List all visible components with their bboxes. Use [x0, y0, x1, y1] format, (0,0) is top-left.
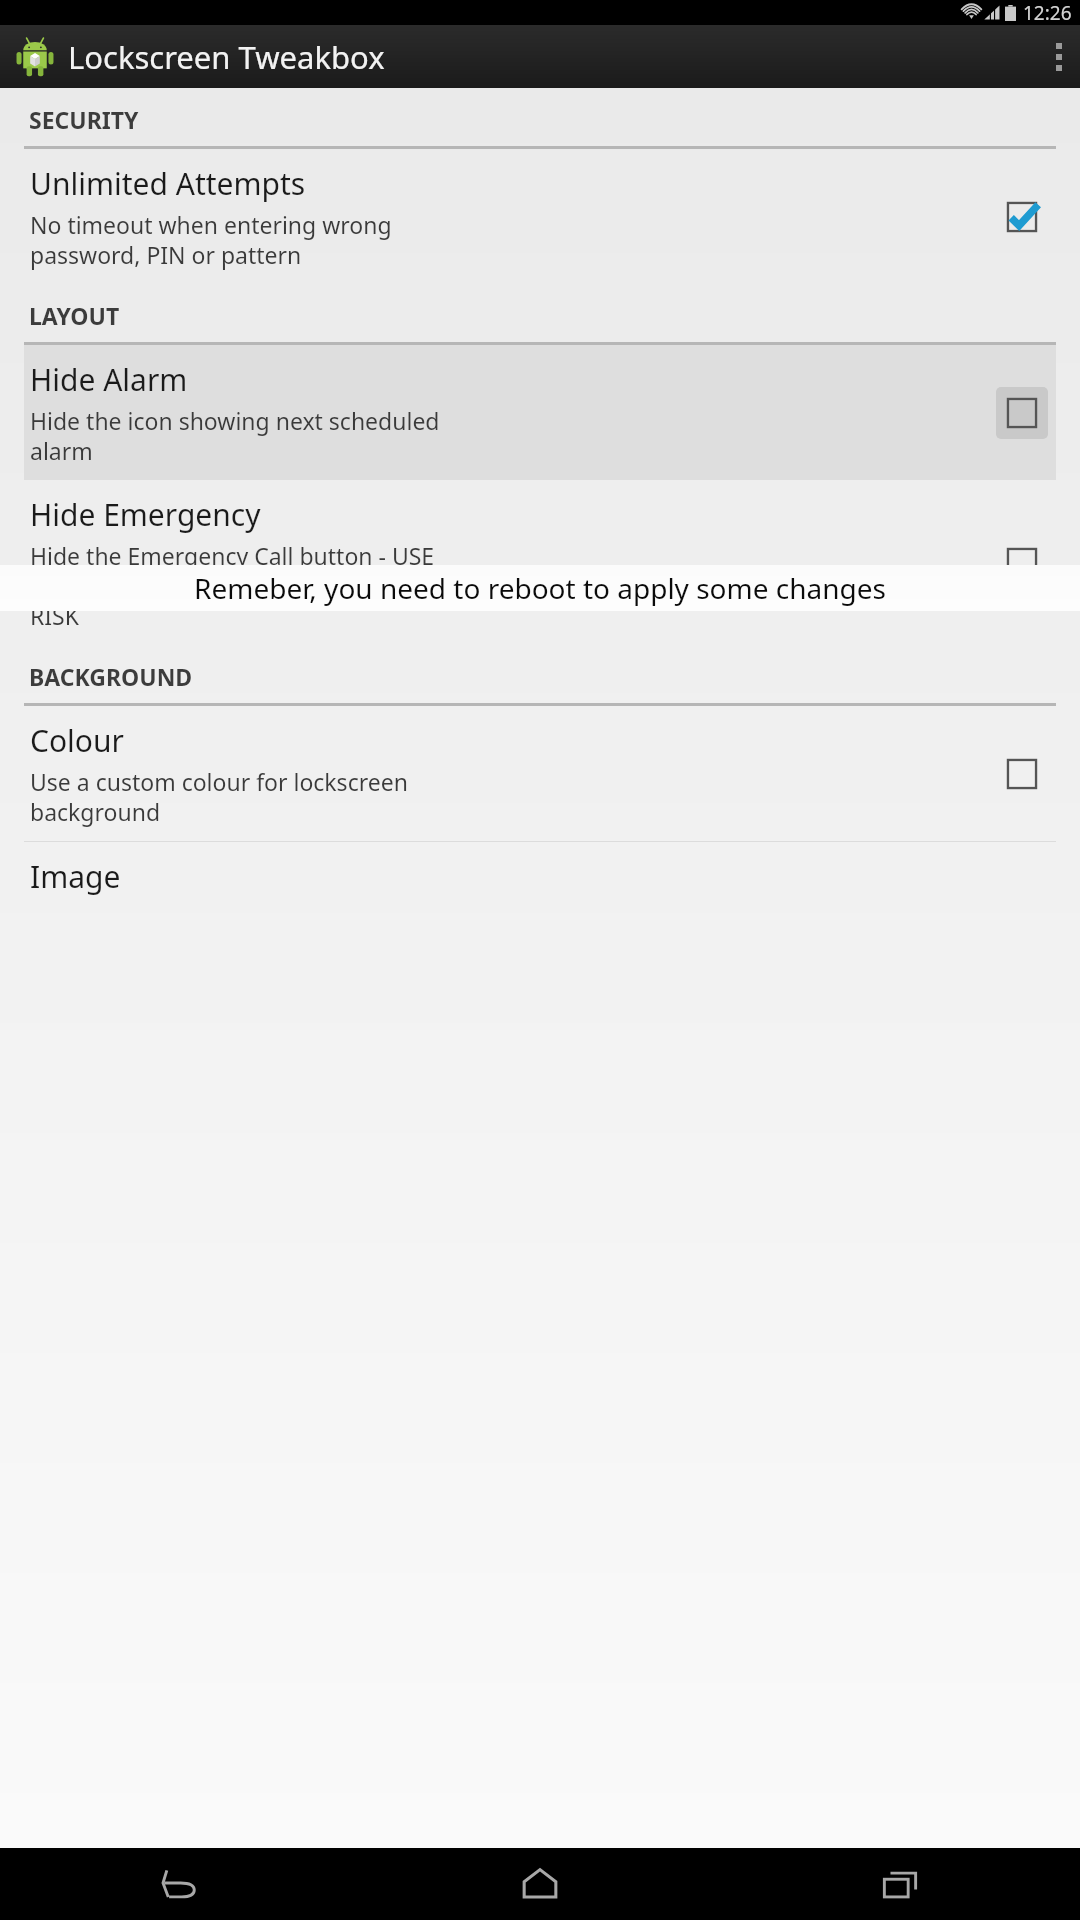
staticText: BACKGROUND [29, 661, 193, 692]
staticText: SECURITY [29, 104, 139, 135]
staticText: Hide Emergency [30, 494, 261, 535]
other: Hide Emergency [996, 537, 1048, 589]
button[interactable]: Colour [24, 706, 1056, 841]
button[interactable]: Back [0, 1848, 360, 1920]
staticText: Unlimited Attempts [30, 163, 306, 204]
staticText: 12:26 [1023, 0, 1072, 25]
other: Unlimited Attempts [996, 191, 1048, 243]
button[interactable]: Unlimited Attempts [24, 149, 1056, 284]
button[interactable]: More options [1038, 25, 1080, 88]
other: Hide Alarm [996, 387, 1048, 439]
staticText: Colour [30, 720, 124, 761]
staticText: No timeout when entering wrong password,… [30, 209, 392, 270]
staticText: Lockscreen Tweakbox [68, 36, 385, 78]
button[interactable]: Recent apps [720, 1848, 1080, 1920]
button[interactable]: Image [24, 842, 1056, 911]
staticText: Use a custom colour for lockscreen backg… [30, 766, 408, 827]
button[interactable]: Hide Emergency [24, 480, 1056, 645]
button[interactable]: Hide Alarm [24, 345, 1056, 480]
staticText: LAYOUT [29, 300, 120, 331]
other: Colour [996, 748, 1048, 800]
staticText: Hide the Emergency Call button - USE WIT… [30, 540, 435, 631]
button[interactable]: Home [360, 1848, 720, 1920]
staticText: Image [30, 856, 121, 897]
staticText: Hide the icon showing next scheduled ala… [30, 405, 440, 466]
staticText: Hide Alarm [30, 359, 188, 400]
staticText: Remeber, you need to reboot to apply som… [6, 569, 1074, 607]
